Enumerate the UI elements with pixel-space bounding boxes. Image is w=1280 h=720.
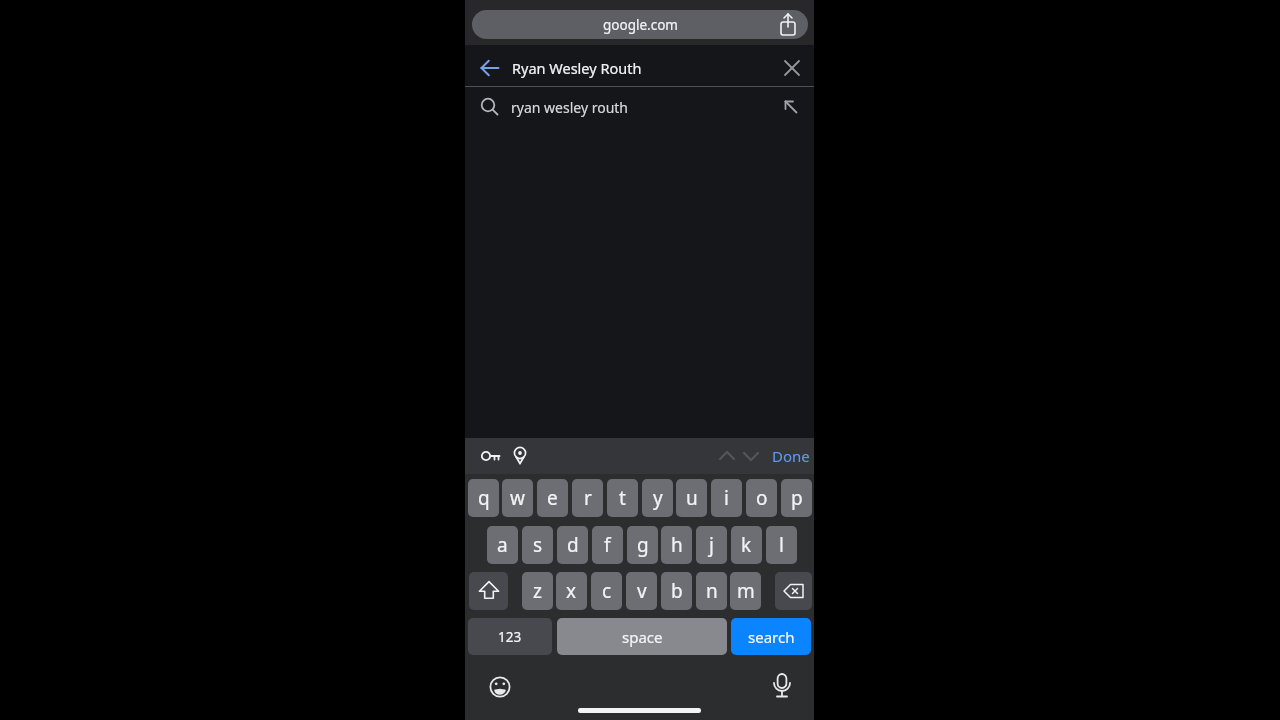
staticText: n <box>706 578 718 604</box>
staticText: s <box>533 532 543 558</box>
staticText: e <box>547 485 558 511</box>
button[interactable]: search <box>731 618 811 655</box>
staticText: h <box>671 532 683 558</box>
button[interactable]: r <box>572 479 603 517</box>
staticText: p <box>791 485 803 511</box>
staticText: google.com <box>603 16 678 34</box>
staticText: k <box>741 532 752 558</box>
button[interactable] <box>509 444 533 468</box>
button[interactable] <box>478 56 502 80</box>
button[interactable]: i <box>711 479 742 517</box>
button[interactable]: g <box>627 526 658 564</box>
staticText: f <box>604 532 611 558</box>
staticText: w <box>510 485 525 511</box>
staticText: 123 <box>498 628 522 646</box>
button[interactable]: b <box>661 572 692 610</box>
staticText: c <box>602 578 612 604</box>
button[interactable] <box>780 56 804 80</box>
staticText: search <box>748 627 795 647</box>
staticText: Ryan Wesley Routh <box>512 58 642 78</box>
button[interactable]: y <box>642 479 673 517</box>
button[interactable]: o <box>746 479 777 517</box>
staticText: d <box>567 532 579 558</box>
button[interactable]: w <box>502 479 533 517</box>
button[interactable] <box>479 444 503 468</box>
button[interactable]: t <box>607 479 638 517</box>
staticText: l <box>779 532 784 558</box>
staticText: i <box>724 485 729 511</box>
button[interactable]: a <box>487 526 518 564</box>
button[interactable]: j <box>696 526 727 564</box>
button[interactable] <box>486 673 514 701</box>
staticText: r <box>584 485 592 511</box>
staticText: q <box>478 485 490 511</box>
button[interactable]: u <box>676 479 707 517</box>
button[interactable]: l <box>766 526 797 564</box>
button[interactable]: space <box>557 618 727 655</box>
staticText: x <box>566 578 577 604</box>
button[interactable]: 123 <box>468 618 552 655</box>
button[interactable] <box>715 444 739 468</box>
staticText: b <box>671 578 683 604</box>
staticText: o <box>756 485 768 511</box>
button[interactable]: z <box>522 572 553 610</box>
staticText: z <box>533 578 542 604</box>
staticText: m <box>737 578 755 604</box>
button[interactable]: h <box>661 526 692 564</box>
button[interactable]: q <box>468 479 499 517</box>
staticText: j <box>709 532 714 558</box>
button[interactable]: v <box>626 572 657 610</box>
staticText: space <box>622 627 663 647</box>
button[interactable]: m <box>730 572 761 610</box>
button[interactable]: f <box>592 526 623 564</box>
staticText: y <box>653 485 663 511</box>
button[interactable]: k <box>731 526 762 564</box>
button[interactable]: Done <box>768 444 810 468</box>
staticText: ryan wesley routh <box>511 98 629 117</box>
button[interactable]: ryan wesley routh <box>465 87 814 128</box>
button[interactable]: c <box>591 572 622 610</box>
button[interactable]: n <box>696 572 727 610</box>
button[interactable]: x <box>556 572 587 610</box>
button[interactable] <box>469 572 508 610</box>
button[interactable]: e <box>537 479 568 517</box>
button[interactable]: p <box>781 479 812 517</box>
button[interactable]: d <box>557 526 588 564</box>
button[interactable] <box>775 572 812 610</box>
button[interactable] <box>777 12 799 37</box>
staticText: t <box>619 485 626 511</box>
staticText: Done <box>772 446 810 466</box>
button[interactable]: s <box>522 526 553 564</box>
staticText: v <box>637 578 647 604</box>
button[interactable] <box>472 10 808 39</box>
button[interactable] <box>768 671 796 703</box>
button[interactable] <box>739 444 763 468</box>
staticText: u <box>686 485 698 511</box>
staticText: a <box>497 532 508 558</box>
staticText: g <box>637 532 649 558</box>
